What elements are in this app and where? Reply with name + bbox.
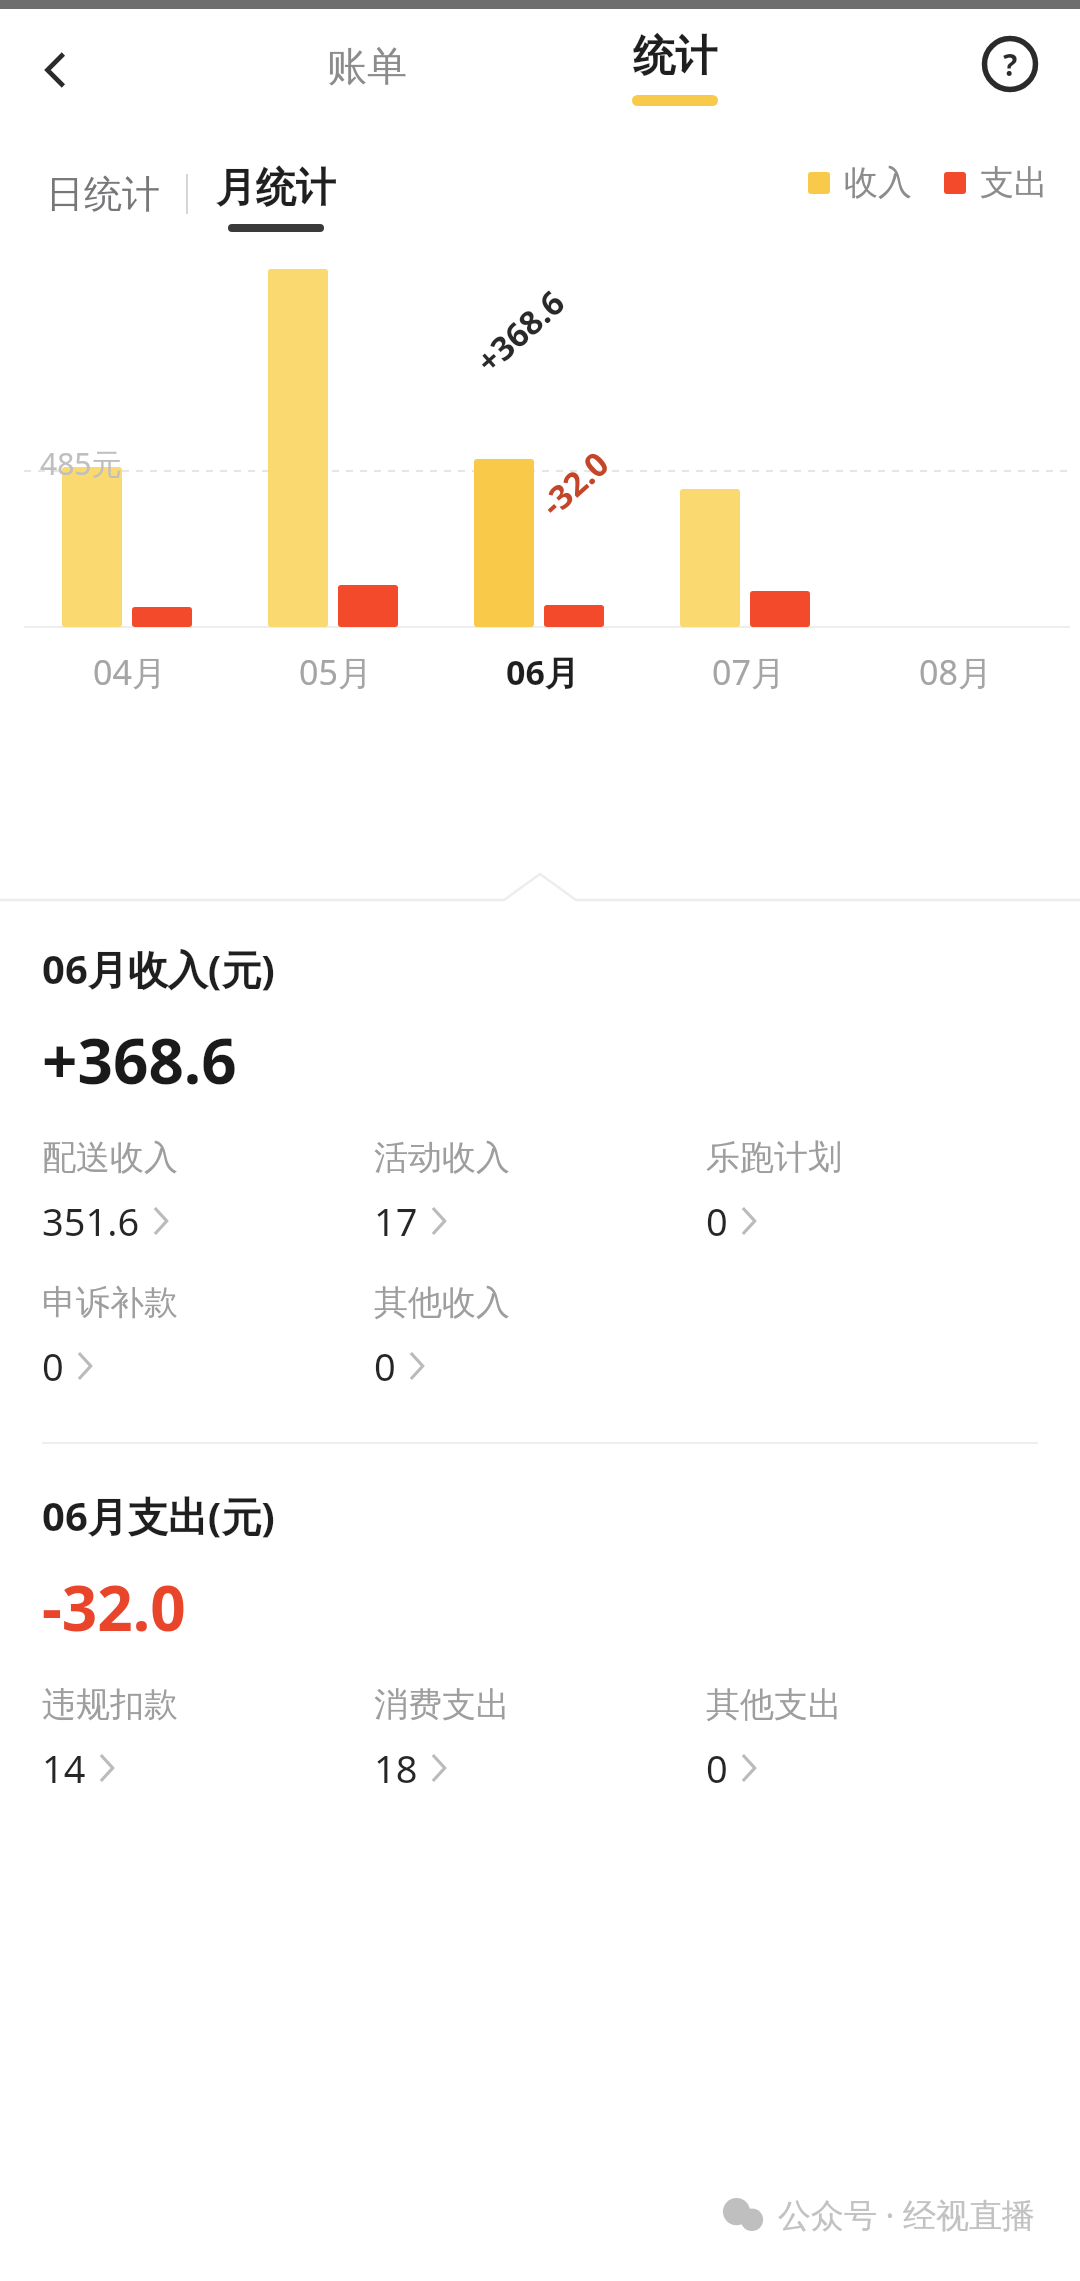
staticText: 乐跑计划: [706, 1136, 842, 1179]
staticText: 06月: [506, 649, 579, 695]
button[interactable]: 其他支出: [706, 1683, 850, 1796]
button[interactable]: 账单: [315, 33, 419, 99]
staticText: 消费支出: [374, 1683, 510, 1726]
button[interactable]: Help: [970, 24, 1050, 104]
staticText: 351.6: [42, 1195, 140, 1247]
staticText: 0: [706, 1742, 728, 1794]
staticText: 支出: [980, 161, 1048, 204]
staticText: 04月: [93, 649, 166, 695]
staticText: 活动收入: [374, 1136, 510, 1179]
staticText: 违规扣款: [42, 1683, 178, 1726]
button[interactable]: 月统计: [212, 156, 340, 218]
staticText: ?: [1003, 44, 1018, 85]
button[interactable]: 配送收入: [42, 1136, 186, 1249]
staticText: +368.6: [466, 280, 574, 383]
button[interactable]: Back: [18, 31, 96, 109]
staticText: 公众号 · 经视直播: [778, 2192, 1036, 2237]
staticText: 0: [374, 1340, 396, 1392]
staticText: 配送收入: [42, 1136, 178, 1179]
button[interactable]: 违规扣款: [42, 1683, 186, 1796]
staticText: +368.6: [42, 1018, 237, 1102]
button[interactable]: 05月: [270, 649, 400, 695]
staticText: 14: [42, 1742, 86, 1794]
button[interactable]: 其他收入: [374, 1281, 518, 1394]
staticText: 统计: [633, 30, 717, 83]
staticText: 08月: [919, 649, 992, 695]
staticText: 申诉补款: [42, 1281, 178, 1324]
staticText: 0: [706, 1195, 728, 1247]
button[interactable]: 申诉补款: [42, 1281, 186, 1394]
staticText: 日统计: [46, 170, 160, 218]
button[interactable]: 07月: [683, 649, 813, 695]
staticText: 收入: [844, 161, 912, 204]
staticText: 0: [42, 1340, 64, 1392]
button[interactable]: 06月: [477, 649, 607, 695]
staticText: -32.0: [42, 1565, 186, 1649]
staticText: 18: [374, 1742, 418, 1794]
staticText: 06月收入(元): [42, 941, 275, 996]
button[interactable]: 04月: [64, 649, 194, 695]
button[interactable]: 日统计: [42, 164, 164, 224]
button[interactable]: 活动收入: [374, 1136, 518, 1249]
button[interactable]: 乐跑计划: [706, 1136, 850, 1249]
staticText: -32.0: [531, 441, 618, 526]
staticText: 月统计: [216, 162, 336, 212]
button[interactable]: 统计: [620, 26, 730, 110]
staticText: 05月: [299, 649, 372, 695]
staticText: 17: [374, 1195, 418, 1247]
staticText: 账单: [327, 41, 407, 91]
staticText: 其他支出: [706, 1683, 842, 1726]
button[interactable]: 08月: [890, 649, 1020, 695]
button[interactable]: 消费支出: [374, 1683, 518, 1796]
staticText: 485元: [40, 443, 122, 484]
staticText: 其他收入: [374, 1281, 510, 1324]
staticText: 07月: [712, 649, 785, 695]
staticText: 06月支出(元): [42, 1488, 275, 1543]
